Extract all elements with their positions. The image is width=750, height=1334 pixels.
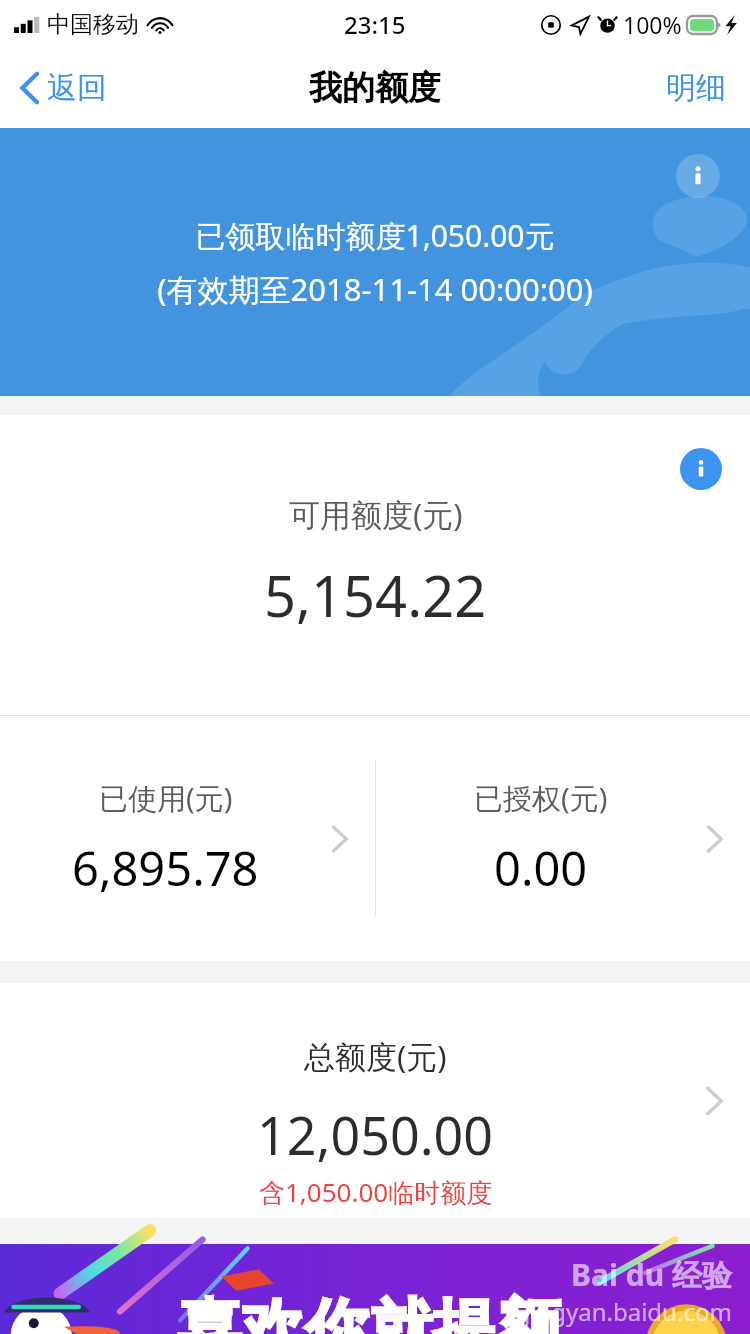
staticText: 5,154.22 [264, 557, 487, 633]
staticText: 已使用(元) [99, 778, 233, 818]
button[interactable]: 已使用(元) [0, 716, 375, 961]
staticText: 12,050.00 [257, 1099, 494, 1170]
staticText: 喜欢你就提额 [177, 1289, 561, 1334]
staticText: 返回 [47, 69, 107, 107]
staticText: 100% [623, 9, 682, 40]
staticText: 含1,050.00临时额度 [259, 1174, 493, 1210]
button[interactable]: 明细 [642, 57, 750, 119]
staticText: 可用额度(元) [289, 493, 463, 535]
staticText: 已授权(元) [474, 778, 608, 818]
staticText: 0.00 [494, 836, 588, 900]
button[interactable]: 可用额度说明 [0, 415, 750, 715]
button[interactable]: 返回 [0, 59, 127, 117]
button[interactable]: 额度说明 [0, 128, 750, 396]
button[interactable]: 提额活动 [0, 1244, 750, 1334]
button[interactable]: 额度说明 [676, 154, 720, 198]
button[interactable]: 已授权(元) [375, 716, 750, 961]
staticText: 明细 [666, 69, 726, 107]
staticText: 总额度(元) [304, 1035, 447, 1077]
staticText: 已领取临时额度1,050.00元 [195, 215, 555, 256]
staticText: 我的额度 [309, 67, 441, 109]
staticText: 中国移动 [47, 10, 139, 39]
staticText: jingyan.baidu.com [524, 1295, 732, 1328]
button[interactable]: 总额度(元) [0, 983, 750, 1218]
button[interactable]: 可用额度说明 [680, 448, 722, 490]
staticText: 6,895.78 [72, 836, 259, 900]
staticText: 23:15 [344, 8, 406, 41]
staticText: (有效期至2018-11-14 00:00:00) [157, 268, 593, 310]
staticText: Bai du 经验 [571, 1254, 732, 1295]
